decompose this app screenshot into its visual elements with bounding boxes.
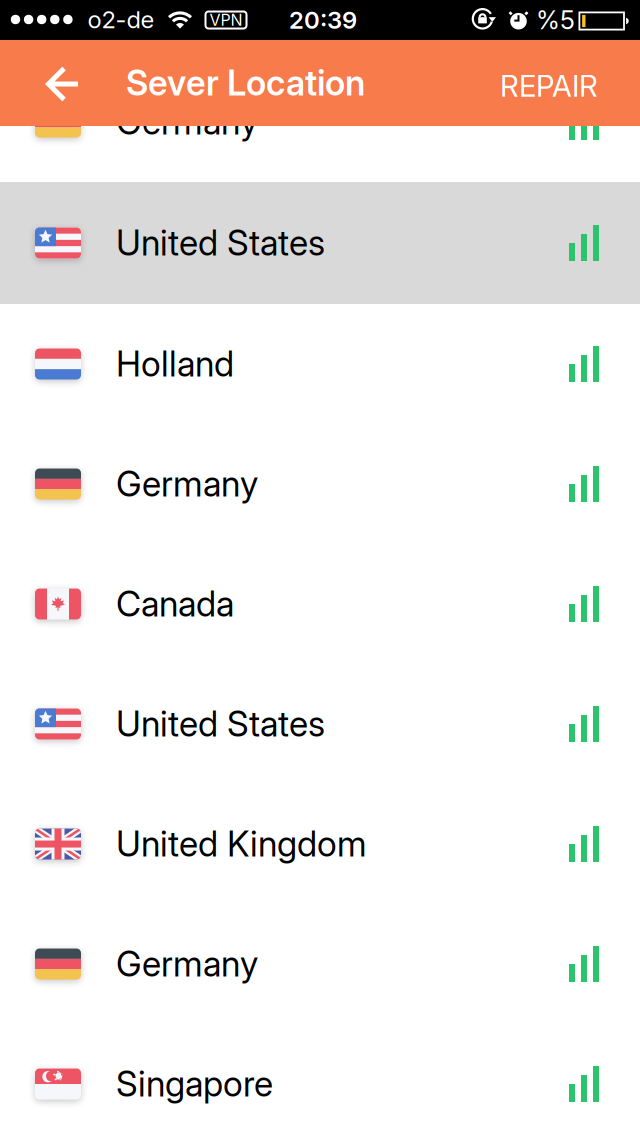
button[interactable]: REPAIR [469,43,629,129]
staticText: Germany [116,102,258,142]
button[interactable]: Singapore [0,1024,640,1136]
staticText: o2-de [87,5,154,34]
button[interactable]: Germany [0,424,640,544]
button[interactable]: Germany [0,904,640,1024]
staticText: VPN [209,11,242,29]
staticText: 20:39 [289,6,357,34]
button[interactable]: United States [0,182,640,304]
staticText: Holland [116,344,234,384]
staticText: Canada [116,584,234,624]
staticText: REPAIR [500,69,598,103]
staticText: Germany [116,464,258,504]
staticText: United States [116,704,325,744]
button[interactable]: Canada [0,544,640,664]
button[interactable]: Germany [0,62,640,182]
button[interactable]: United States [0,664,640,784]
button[interactable]: Holland [0,304,640,424]
staticText: Germany [116,944,258,984]
staticText: United Kingdom [116,824,367,864]
staticText: Sever Location [126,63,365,103]
button[interactable]: United Kingdom [0,784,640,904]
button[interactable]: Back [32,51,92,117]
staticText: Singapore [116,1064,273,1104]
staticText: %5 [536,5,575,35]
staticText: United States [116,223,325,263]
